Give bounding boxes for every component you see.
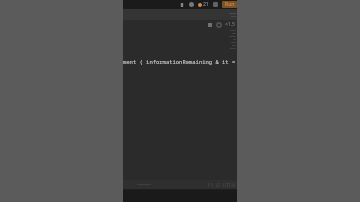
button[interactable]: Search everywhere: [188, 1, 195, 8]
button[interactable]: Notifications: [212, 1, 219, 8]
button[interactable]: <1.5: [225, 21, 235, 28]
button[interactable]: 1:1 LF UTF-8: [207, 182, 235, 188]
button[interactable]: Device manager: [178, 1, 185, 8]
button[interactable]: Run app: [222, 1, 237, 8]
staticText: Run: [225, 1, 235, 8]
button[interactable]: Problems: 21: [198, 1, 209, 8]
button[interactable]: Inspections: [207, 22, 213, 28]
button[interactable]: Reader mode: [216, 22, 222, 28]
staticText: ment { informationRemaining & it = 0.0f: [123, 58, 237, 66]
staticText: 21: [203, 1, 209, 8]
